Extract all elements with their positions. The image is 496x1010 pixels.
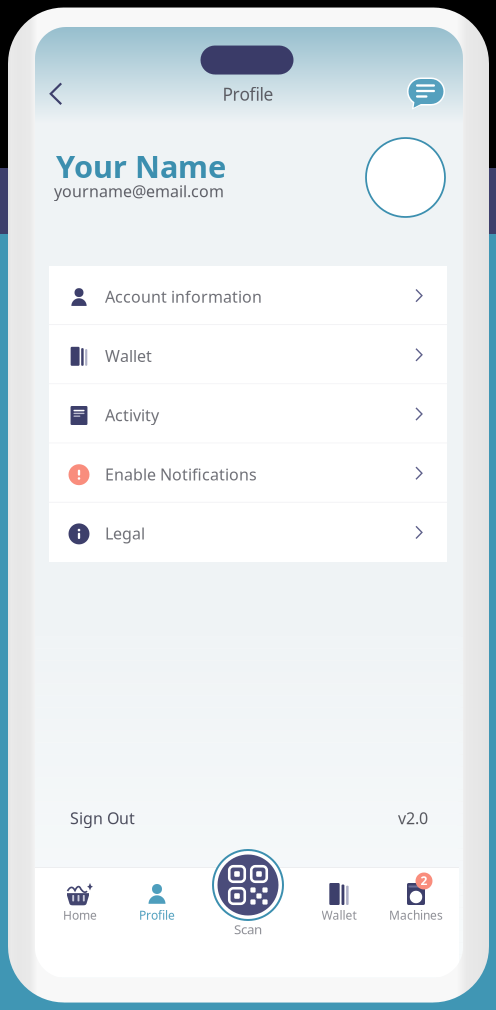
button[interactable]: Wallet	[299, 881, 379, 923]
staticText: Profile	[139, 907, 175, 923]
button[interactable]: Messages	[405, 73, 447, 115]
staticText: Profile	[222, 82, 273, 105]
button[interactable]: Scan	[212, 849, 284, 921]
staticText: Your Name	[56, 146, 226, 186]
button[interactable]: Back	[36, 74, 76, 114]
staticText: 2	[420, 872, 427, 888]
staticText: Scan	[234, 920, 262, 938]
button[interactable]: Machines	[376, 881, 456, 923]
staticText: yourname@email.com	[54, 180, 224, 202]
button[interactable]: Enable Notifications	[49, 444, 447, 503]
staticText: v2.0	[398, 807, 428, 829]
staticText: Sign Out	[70, 807, 135, 829]
staticText: Account information	[105, 286, 262, 307]
staticText: Legal	[105, 523, 145, 544]
button[interactable]: Home	[40, 881, 120, 923]
staticText: Activity	[105, 404, 159, 426]
staticText: Machines	[389, 907, 443, 923]
button[interactable]: Profile	[117, 881, 197, 923]
button[interactable]: Sign Out	[70, 807, 135, 829]
button[interactable]: Account information	[49, 266, 447, 325]
button[interactable]: Activity	[49, 384, 447, 444]
button[interactable]: Legal	[49, 503, 447, 562]
staticText: Wallet	[321, 907, 356, 923]
staticText: Wallet	[105, 345, 152, 366]
staticText: Home	[63, 907, 97, 923]
button[interactable]: Wallet	[49, 325, 447, 384]
staticText: Enable Notifications	[105, 464, 257, 485]
